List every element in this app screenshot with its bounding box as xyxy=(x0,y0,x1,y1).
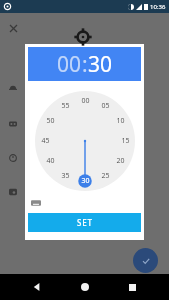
staticText: 00 xyxy=(57,50,82,79)
staticText: 45 xyxy=(41,136,50,146)
staticText: 30 xyxy=(81,176,90,186)
button[interactable]: Switch to text input xyxy=(28,195,44,211)
button[interactable]: Back xyxy=(26,276,48,298)
button[interactable]: Tab 4 xyxy=(5,184,21,200)
staticText: 50 xyxy=(46,116,55,126)
staticText: 35 xyxy=(61,171,70,181)
staticText: 10 xyxy=(116,116,125,126)
staticText: 20 xyxy=(116,156,125,166)
staticText: 05 xyxy=(101,101,110,111)
button[interactable]: Tab 1 xyxy=(5,80,21,96)
staticText: 30 xyxy=(88,50,113,79)
staticText: 00 xyxy=(81,96,90,106)
button[interactable]: Close xyxy=(6,21,20,35)
button[interactable]: Tab 2 xyxy=(5,116,21,132)
staticText: 40 xyxy=(46,156,55,166)
staticText: 25 xyxy=(101,171,110,181)
staticText: : xyxy=(82,50,88,79)
button[interactable]: Recent apps xyxy=(121,276,143,298)
staticText: 10:36 xyxy=(150,3,166,11)
staticText: SET xyxy=(77,217,93,228)
staticText: 15 xyxy=(121,136,130,146)
button[interactable]: 00 xyxy=(28,47,141,81)
button[interactable]: Tab 3 xyxy=(5,150,21,166)
button[interactable]: Add xyxy=(133,248,158,273)
button[interactable]: Home xyxy=(74,276,96,298)
button[interactable]: SET xyxy=(28,213,141,232)
staticText: 55 xyxy=(61,101,70,111)
